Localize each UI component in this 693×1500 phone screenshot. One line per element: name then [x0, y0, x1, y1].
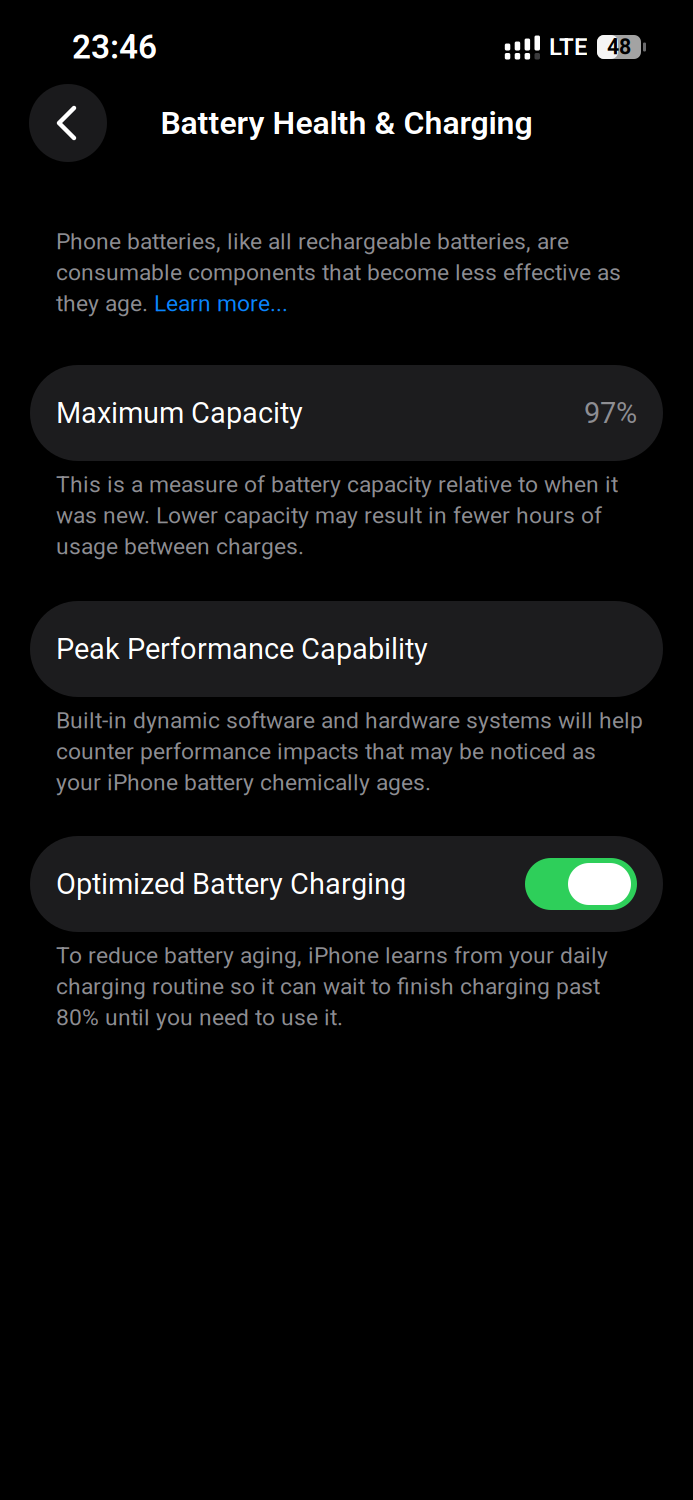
staticText: Battery Health & Charging: [160, 104, 532, 142]
staticText: Phone batteries, like all rechargeable b…: [56, 228, 569, 255]
staticText: LTE: [549, 33, 588, 61]
staticText: 80% until you need to use it.: [56, 1004, 343, 1031]
staticText: This is a measure of battery capacity re…: [56, 471, 618, 498]
button[interactable]: Optimized Battery Charging: [30, 836, 663, 932]
staticText: they age.: [56, 290, 154, 317]
staticText: usage between charges.: [56, 533, 304, 560]
staticText: Optimized Battery Charging: [56, 867, 406, 901]
staticText: counter performance impacts that may be …: [56, 738, 596, 765]
staticText: consumable components that become less e…: [56, 259, 621, 286]
button[interactable]: Peak Performance Capability: [30, 601, 663, 697]
staticText: Maximum Capacity: [56, 396, 303, 430]
staticText: 23:46: [72, 27, 157, 67]
staticText: Built-in dynamic software and hardware s…: [56, 707, 643, 734]
staticText: 48: [607, 34, 631, 59]
staticText: was new. Lower capacity may result in fe…: [56, 502, 602, 529]
staticText: To reduce battery aging, iPhone learns f…: [56, 942, 608, 969]
staticText: your iPhone battery chemically ages.: [56, 769, 431, 796]
staticText: Learn more...: [154, 290, 288, 317]
button[interactable]: Back: [29, 84, 107, 162]
staticText: charging routine so it can wait to finis…: [56, 973, 600, 1000]
staticText: Peak Performance Capability: [56, 632, 428, 666]
button[interactable]: Learn more...: [154, 290, 288, 317]
staticText: 97%: [584, 396, 637, 430]
button[interactable]: Maximum Capacity: [30, 365, 663, 461]
